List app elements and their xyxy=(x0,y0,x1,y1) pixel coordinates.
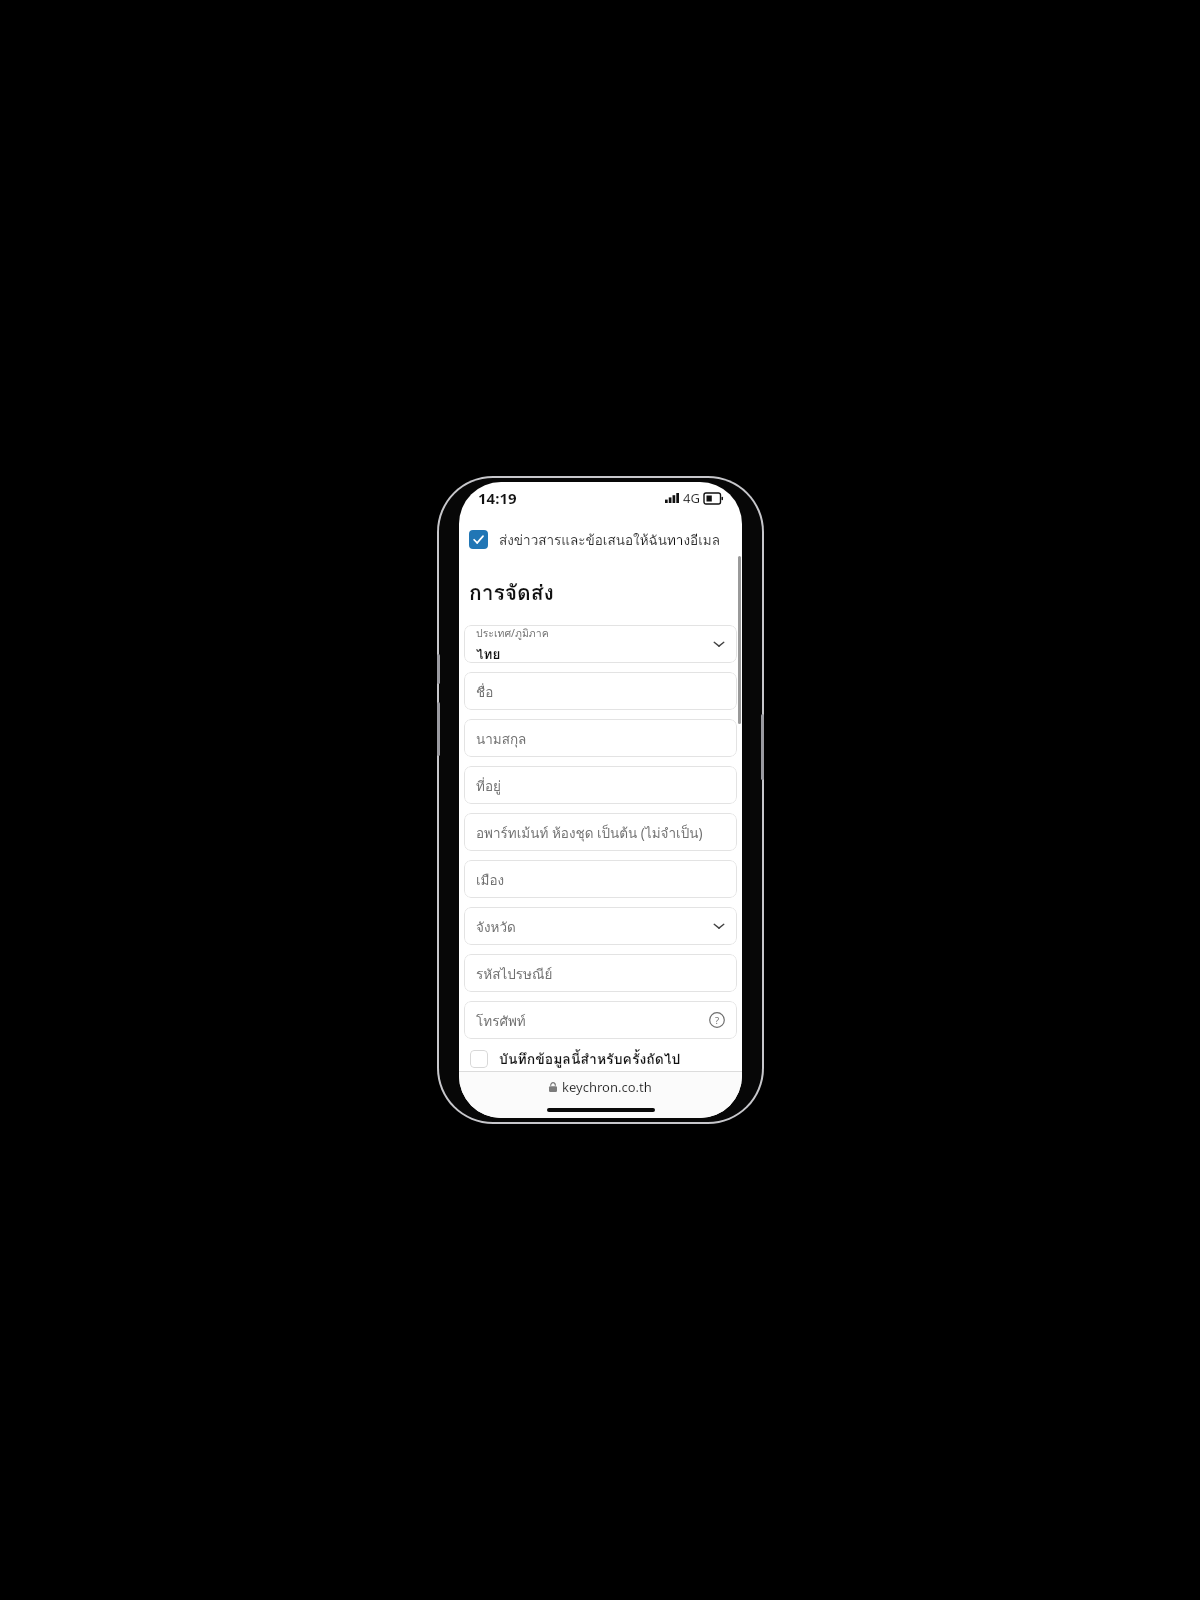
staticText: ที่อยู่ xyxy=(476,775,501,796)
staticText: อพาร์ทเม้นท์ ห้องชุด เป็นต้น (ไม่จำเป็น) xyxy=(476,822,703,843)
staticText: นามสกุล xyxy=(476,728,527,749)
button[interactable]: ประเทศ/ภูมิภาค xyxy=(464,625,737,663)
other: Expand ประเทศ/ภูมิภาค xyxy=(713,638,725,650)
staticText: 4G xyxy=(683,489,700,507)
staticText: การจัดส่ง xyxy=(469,576,554,609)
staticText: บันทึกข้อมูลนี้สำหรับครั้งถัดไป xyxy=(499,1048,681,1070)
staticText: ส่งข่าวสารและข้อเสนอให้ฉันทางอีเมล xyxy=(499,529,720,550)
staticText: รหัสไปรษณีย์ xyxy=(476,963,553,984)
button[interactable]: ที่อยู่ xyxy=(464,766,737,804)
staticText: ไทย xyxy=(476,643,501,663)
staticText: ชื่อ xyxy=(476,681,494,702)
button[interactable]: ส่งข่าวสารและข้อเสนอให้ฉันทางอีเมล xyxy=(469,524,737,554)
button[interactable]: โทรศัพท์ xyxy=(464,1001,737,1039)
other: Expand จังหวัด xyxy=(713,920,725,932)
button[interactable]: จังหวัด xyxy=(464,907,737,945)
staticText: ? xyxy=(715,1014,720,1027)
button[interactable]: Help xyxy=(707,1010,727,1030)
button[interactable]: อพาร์ทเม้นท์ ห้องชุด เป็นต้น (ไม่จำเป็น) xyxy=(464,813,737,851)
staticText: keychron.co.th xyxy=(562,1078,652,1096)
button[interactable]: รหัสไปรษณีย์ xyxy=(464,954,737,992)
staticText: ประเทศ/ภูมิภาค xyxy=(476,625,549,642)
button[interactable]: บันทึกข้อมูลนี้สำหรับครั้งถัดไป xyxy=(470,1046,737,1071)
staticText: เมือง xyxy=(476,869,505,890)
staticText: 14:19 xyxy=(478,488,517,508)
button[interactable]: ชื่อ xyxy=(464,672,737,710)
staticText: จังหวัด xyxy=(476,916,516,937)
button[interactable]: เมือง xyxy=(464,860,737,898)
staticText: โทรศัพท์ xyxy=(476,1010,526,1031)
button[interactable]: นามสกุล xyxy=(464,719,737,757)
